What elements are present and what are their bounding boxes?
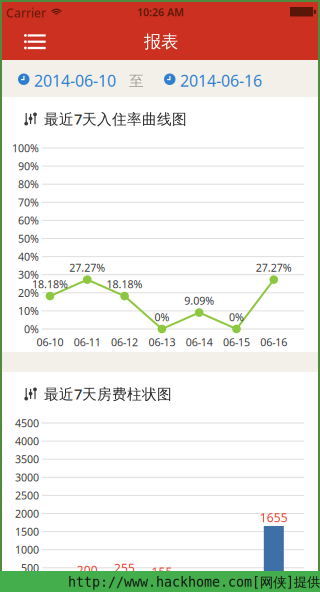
staticText: 至 [129,72,144,90]
staticText: 80% [18,177,39,191]
staticText: 3000 [15,470,39,484]
staticText: 20% [18,286,39,300]
button[interactable]: 2014-06-16 [164,63,270,95]
staticText: 最近7天入住率曲线图 [44,109,187,128]
staticText: 4500 [15,416,39,430]
staticText: 18.18% [32,277,68,291]
staticText: 10% [18,304,39,318]
button[interactable]: Menu [2,22,48,60]
staticText: 30% [18,268,39,282]
staticText: 0 [196,569,203,585]
staticText: 06-16 [260,335,287,349]
staticText: 0 [46,569,53,585]
staticText: 500 [21,561,39,575]
staticText: 06-12 [111,335,138,349]
staticText: 最近7天房费柱状图 [44,384,172,403]
staticText: 50% [18,231,39,246]
staticText: 1655 [260,509,288,525]
staticText: 2014-06-16 [180,70,262,91]
staticText: 27.27% [256,261,292,275]
staticText: 0% [24,322,39,336]
staticText: 2500 [15,488,39,502]
staticText: 3500 [15,452,39,466]
staticText: 10:26 AM [137,5,184,19]
staticText: 4000 [15,434,39,448]
staticText: 0 [233,569,240,585]
staticText: 255 [114,560,135,576]
staticText: 27.27% [69,261,105,275]
staticText: http://www.hackhome.com[网侠]提供 [68,574,320,590]
staticText: 90% [18,159,39,173]
staticText: 0% [229,310,244,324]
staticText: 0% [154,310,169,324]
button[interactable]: 2014-06-10 [18,63,124,95]
staticText: Carrier [6,5,46,21]
staticText: 1500 [15,524,39,539]
staticText: 06-15 [223,335,250,349]
staticText: 40% [18,249,39,264]
staticText: 06-13 [148,335,175,349]
staticText: 报表 [144,31,178,52]
staticText: 100% [12,141,39,155]
staticText: 155 [151,564,172,580]
staticText: 06-11 [74,335,101,349]
staticText: 9.09% [184,293,214,308]
staticText: 18.18% [107,277,143,291]
staticText: 1000 [15,543,39,557]
staticText: 06-14 [186,335,213,349]
staticText: 60% [18,213,39,227]
staticText: 70% [18,195,39,209]
staticText: 2000 [15,506,39,521]
staticText: 200 [77,562,98,578]
staticText: 06-10 [36,335,63,349]
staticText: 2014-06-10 [34,70,116,91]
